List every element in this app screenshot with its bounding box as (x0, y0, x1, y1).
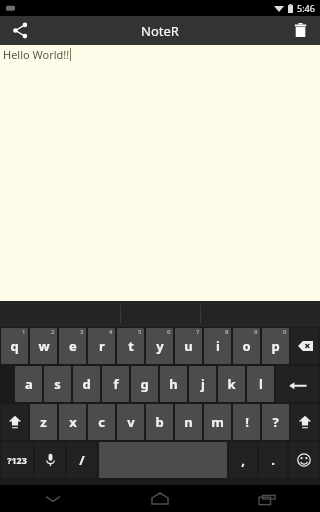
staticText: i (216, 337, 220, 355)
button[interactable]: , (229, 442, 257, 478)
other: Voice input (46, 453, 55, 467)
staticText: 6 (167, 328, 171, 336)
button[interactable]: Shift (1, 404, 28, 440)
staticText: 3 (80, 328, 84, 336)
staticText: , (241, 451, 245, 469)
button[interactable]: Shift (291, 404, 319, 440)
button[interactable]: r (88, 328, 115, 364)
staticText: 1 (22, 328, 26, 336)
button[interactable]: Delete (280, 16, 320, 45)
staticText: m (211, 413, 224, 431)
button[interactable]: a (15, 366, 42, 402)
staticText: 7 (196, 328, 200, 336)
staticText: 9 (254, 328, 258, 336)
button[interactable]: Home (106, 485, 213, 512)
button[interactable]: v (117, 404, 144, 440)
button[interactable]: Hide keyboard (0, 485, 106, 512)
staticText: NoteR (141, 22, 179, 40)
staticText: d (82, 375, 91, 393)
staticText: w (38, 337, 50, 355)
staticText: g (140, 375, 149, 393)
staticText: r (99, 337, 105, 355)
button[interactable]: f (102, 366, 129, 402)
staticText: Hello World!! (3, 47, 70, 62)
other: Enter (289, 379, 307, 390)
button[interactable]: Emoji (289, 442, 319, 478)
other: Shift (298, 415, 312, 429)
button[interactable]: ! (233, 404, 260, 440)
staticText: u (184, 337, 193, 355)
button[interactable]: / (67, 442, 97, 478)
button[interactable]: g (131, 366, 158, 402)
staticText: x (69, 413, 77, 431)
staticText: j (201, 375, 205, 393)
staticText: y (156, 337, 164, 355)
staticText: s (54, 375, 61, 393)
button[interactable]: n (175, 404, 202, 440)
staticText: o (242, 337, 251, 355)
staticText: 5 (138, 328, 142, 336)
staticText: z (40, 413, 47, 431)
button[interactable]: Voice input (35, 442, 65, 478)
button[interactable]: u (175, 328, 202, 364)
staticText: e (69, 337, 77, 355)
button[interactable]: b (146, 404, 173, 440)
staticText: p (271, 337, 280, 355)
staticText: t (128, 337, 134, 355)
staticText: c (98, 413, 105, 431)
button[interactable]: t (117, 328, 144, 364)
button[interactable]: Share (0, 16, 40, 45)
button[interactable]: c (88, 404, 115, 440)
staticText: ! (245, 413, 249, 431)
button[interactable]: Backspace (291, 328, 319, 364)
staticText: . (271, 451, 275, 469)
staticText: l (259, 375, 263, 393)
other: Shift (8, 415, 22, 429)
button[interactable]: i (204, 328, 231, 364)
staticText: 0 (283, 328, 287, 336)
other: Emoji (297, 453, 311, 467)
button[interactable]: m (204, 404, 231, 440)
button[interactable]: Recent apps (213, 485, 320, 512)
staticText: 8 (225, 328, 229, 336)
button[interactable]: o (233, 328, 260, 364)
button[interactable]: . (259, 442, 287, 478)
button[interactable]: j (189, 366, 216, 402)
staticText: k (227, 375, 236, 393)
button[interactable]: y (146, 328, 173, 364)
staticText: 5:46 (297, 2, 315, 14)
button[interactable]: w (30, 328, 57, 364)
staticText: ?123 (7, 454, 27, 466)
button[interactable]: s (44, 366, 71, 402)
staticText: f (113, 375, 119, 393)
button[interactable]: p (262, 328, 289, 364)
button[interactable]: ? (262, 404, 289, 440)
button[interactable]: e (59, 328, 86, 364)
button[interactable]: x (59, 404, 86, 440)
button[interactable]: h (160, 366, 187, 402)
button[interactable]: d (73, 366, 100, 402)
staticText: ? (272, 413, 279, 431)
staticText: a (25, 375, 33, 393)
staticText: / (79, 451, 85, 469)
button[interactable]: l (247, 366, 274, 402)
staticText: 4 (109, 328, 113, 336)
button[interactable]: Enter (276, 366, 319, 402)
button[interactable]: k (218, 366, 245, 402)
staticText: v (127, 413, 135, 431)
button[interactable]: z (30, 404, 57, 440)
staticText: q (10, 337, 19, 355)
staticText: n (184, 413, 193, 431)
staticText: 2 (51, 328, 55, 336)
staticText: b (155, 413, 164, 431)
button[interactable]: ?123 (1, 442, 33, 478)
other: Backspace (298, 341, 313, 351)
button[interactable]: q (1, 328, 28, 364)
staticText: h (169, 375, 178, 393)
